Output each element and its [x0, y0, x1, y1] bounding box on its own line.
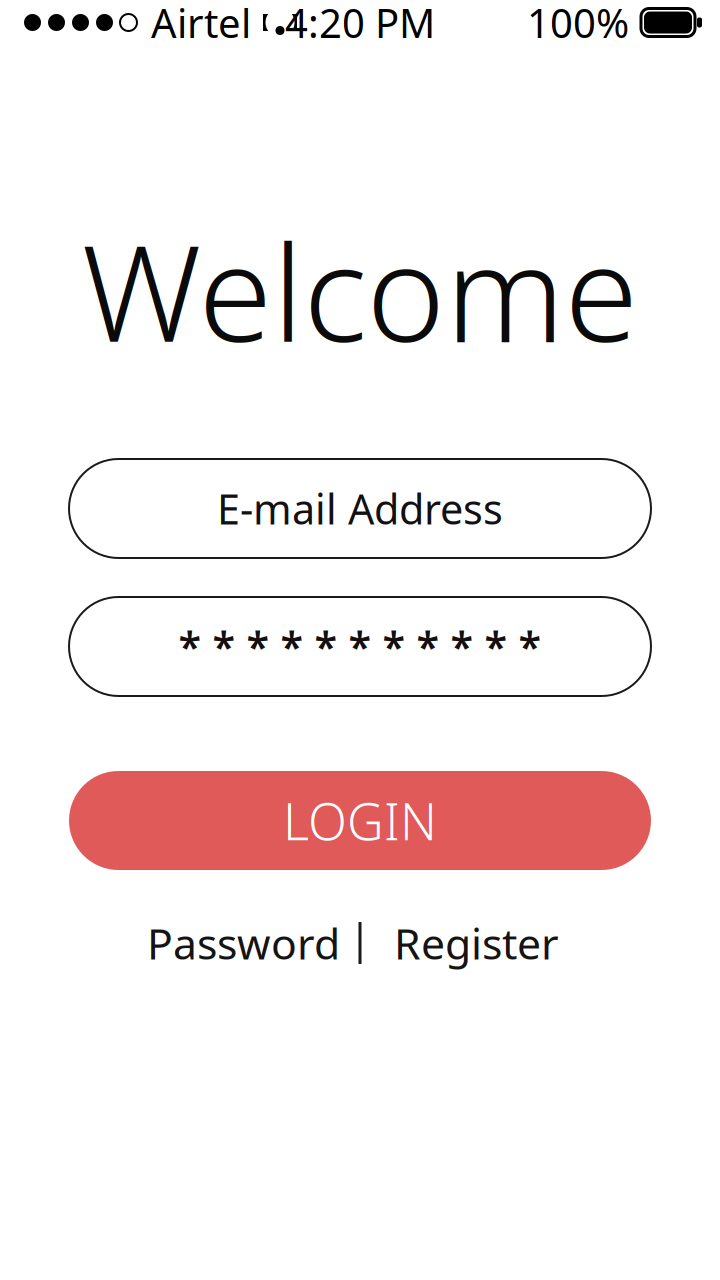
staticText: Register	[394, 915, 559, 971]
button[interactable]: E-mail Address	[69, 459, 651, 558]
staticText: Airtel	[151, 0, 251, 49]
button[interactable]: LOGIN	[69, 771, 651, 870]
staticText: 4:20 PM	[285, 0, 435, 49]
button[interactable]: Register	[361, 915, 591, 971]
staticText: 100%	[527, 0, 629, 49]
staticText: Welcome	[81, 201, 638, 379]
staticText: E-mail Address	[217, 481, 503, 536]
button[interactable]: * * * * * * * * * * *	[69, 597, 651, 696]
staticText: Password	[147, 915, 340, 971]
button[interactable]: Password	[128, 915, 358, 971]
staticText: * * * * * * * * * * *	[178, 619, 541, 674]
staticText: LOGIN	[283, 787, 437, 854]
